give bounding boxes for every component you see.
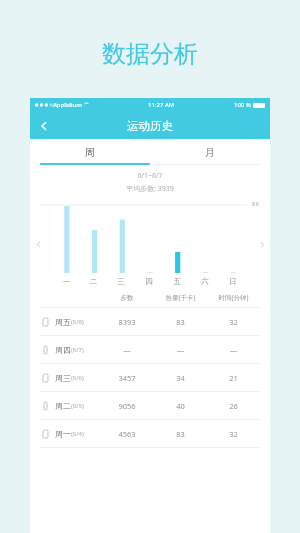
staticText: 32 xyxy=(207,317,260,327)
staticText: 热量(千卡) xyxy=(154,293,207,302)
staticText: 周 xyxy=(85,146,95,159)
staticText: 周二 xyxy=(55,401,71,411)
staticText: — xyxy=(207,345,260,355)
staticText: Applidium xyxy=(53,101,82,109)
staticText: 五 xyxy=(163,277,191,286)
button[interactable]: 周五 xyxy=(30,308,270,335)
staticText: 三 xyxy=(107,277,135,286)
staticText: 32 xyxy=(207,429,260,439)
staticText: 11:27 AM xyxy=(148,101,175,109)
staticText: 周四 xyxy=(55,345,71,355)
staticText: (6/8) xyxy=(71,318,84,326)
staticText: 21 xyxy=(207,373,260,383)
button[interactable]: Previous week xyxy=(30,236,46,252)
button[interactable]: Next week xyxy=(254,236,270,252)
button[interactable]: 周三 xyxy=(30,364,270,391)
button[interactable]: 周四 xyxy=(30,336,270,363)
button[interactable]: Back xyxy=(30,112,57,139)
staticText: 运动历史 xyxy=(127,119,173,133)
button[interactable]: 周一 xyxy=(30,420,270,447)
staticText: 平均步数: 3939 xyxy=(30,184,270,194)
staticText: 3457 xyxy=(100,373,154,383)
button[interactable]: 月 xyxy=(150,139,270,165)
staticText: 周三 xyxy=(55,373,71,383)
staticText: 9056 xyxy=(100,401,154,411)
staticText: 六 xyxy=(191,277,219,286)
staticText: 数据分析 xyxy=(102,39,198,69)
staticText: (6/4) xyxy=(71,430,84,438)
button[interactable]: 周 xyxy=(30,139,150,165)
staticText: 步数 xyxy=(100,294,154,302)
staticText: 四 xyxy=(135,277,163,286)
staticText: — xyxy=(100,345,154,355)
staticText: 8K xyxy=(252,200,260,208)
staticText: 83 xyxy=(154,317,207,327)
staticText: 26 xyxy=(207,401,260,411)
staticText: — xyxy=(154,345,207,355)
staticText: 4563 xyxy=(100,429,154,439)
staticText: 6/1~6/7 xyxy=(30,171,270,181)
staticText: (6/6) xyxy=(71,374,84,382)
staticText: 周五 xyxy=(55,317,71,327)
staticText: 日 xyxy=(219,277,247,286)
staticText: 83 xyxy=(154,429,207,439)
staticText: 8393 xyxy=(100,317,154,327)
staticText: 周一 xyxy=(55,429,71,439)
button[interactable]: 周二 xyxy=(30,392,270,419)
staticText: 一 xyxy=(53,277,80,286)
staticText: (6/5) xyxy=(71,402,84,410)
staticText: 时间(分钟) xyxy=(207,293,260,302)
staticText: 二 xyxy=(80,277,107,286)
staticText: (6/7) xyxy=(71,346,84,354)
staticText: 34 xyxy=(154,373,207,383)
staticText: 100 % xyxy=(234,101,251,109)
staticText: 月 xyxy=(205,146,215,159)
staticText: 40 xyxy=(154,401,207,411)
